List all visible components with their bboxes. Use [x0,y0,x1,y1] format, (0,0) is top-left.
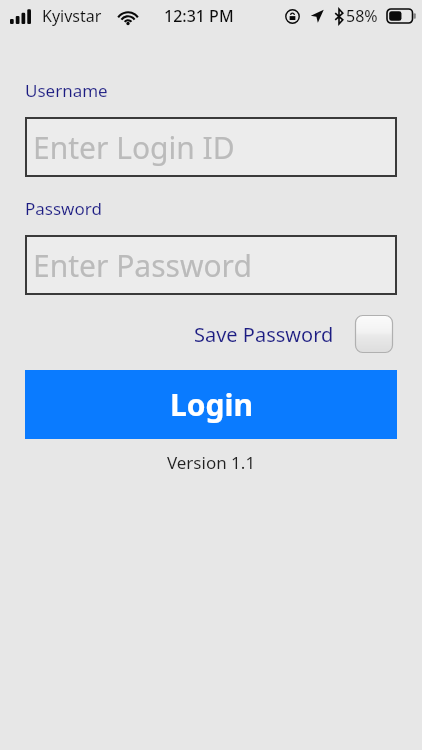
staticText: Password [25,197,102,220]
staticText: Kyivstar [42,5,102,27]
button[interactable]: Login [25,370,397,439]
staticText: Version 1.1 [0,451,422,474]
staticText: Login [170,384,253,425]
button[interactable]: Enter Password [25,235,397,295]
button[interactable]: Save Password [354,314,394,354]
staticText: Save Password [194,321,334,348]
staticText: Username [25,79,108,102]
button[interactable]: Enter Login ID [25,117,397,177]
staticText: 58% [346,5,378,27]
staticText: Enter Password [33,245,252,286]
button[interactable]: Save Password [192,312,396,356]
staticText: Enter Login ID [33,127,235,168]
staticText: 12:31 PM [164,5,234,27]
